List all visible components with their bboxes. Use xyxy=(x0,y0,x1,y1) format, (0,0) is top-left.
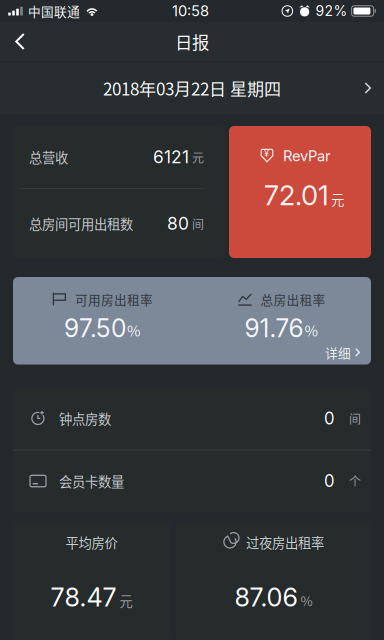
staticText: 0 xyxy=(324,471,335,491)
staticText: 0 xyxy=(324,408,335,429)
staticText: 78.47 xyxy=(50,582,116,612)
button[interactable]: 钟点房数 xyxy=(13,387,371,449)
staticText: 97.50 xyxy=(64,313,126,343)
button[interactable]: Back xyxy=(0,22,40,61)
staticText: 平均房价 xyxy=(65,532,117,552)
staticText: 10:58 xyxy=(172,2,209,20)
staticText: 个 xyxy=(349,472,361,490)
staticText: 会员卡数量 xyxy=(59,471,124,491)
staticText: 元 xyxy=(331,189,344,209)
staticText: 间 xyxy=(192,215,204,232)
staticText: % xyxy=(304,319,318,341)
staticText: 中国联通 xyxy=(28,2,80,20)
button[interactable]: 会员卡数量 xyxy=(13,450,371,511)
staticText: 钟点房数 xyxy=(59,409,111,428)
staticText: 92% xyxy=(316,2,348,19)
staticText: 2018年03月22日 星期四 xyxy=(103,76,281,100)
staticText: 91.76 xyxy=(244,313,303,343)
staticText: 总营收 xyxy=(29,147,68,167)
staticText: RevPar xyxy=(283,147,331,165)
staticText: 总房间可用出租数 xyxy=(29,214,133,233)
staticText: 元 xyxy=(192,149,204,166)
staticText: 80 xyxy=(167,213,189,234)
button[interactable]: 可用房出租率 xyxy=(13,277,371,364)
staticText: 总房出租率 xyxy=(260,290,325,308)
staticText: % xyxy=(127,319,141,341)
staticText: 87.06 xyxy=(234,582,297,612)
staticText: ¥ xyxy=(264,148,269,159)
button[interactable]: 2018年03月22日 星期四 xyxy=(0,62,384,114)
staticText: 元 xyxy=(119,591,132,610)
staticText: % xyxy=(300,591,312,610)
staticText: 6121 xyxy=(153,146,189,167)
staticText: 72.01 xyxy=(264,179,329,212)
staticText: 可用房出租率 xyxy=(75,290,153,308)
staticText: 日报 xyxy=(175,29,209,54)
staticText: 间 xyxy=(349,410,361,427)
staticText: 过夜房出租率 xyxy=(246,532,324,552)
staticText: 详细 xyxy=(325,343,351,361)
